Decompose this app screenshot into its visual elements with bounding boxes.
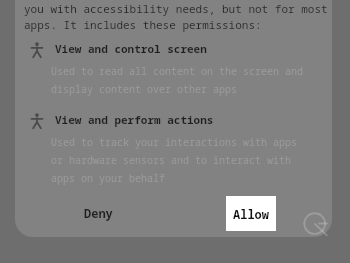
staticText: Used to read all content on the screen a… [51,64,303,96]
staticText: Used to track your interactions with app… [51,135,297,185]
staticText: View and perform actions [55,112,214,127]
button[interactable]: Allow [226,196,276,231]
other: Accessibility [29,113,45,129]
staticText: you with accessibility needs, but not fo… [24,1,328,33]
button[interactable]: Deny [64,200,132,226]
staticText: Allow [233,206,270,222]
staticText: View and control screen [55,41,207,56]
other: Accessibility [29,42,45,58]
staticText: Deny [84,205,113,221]
